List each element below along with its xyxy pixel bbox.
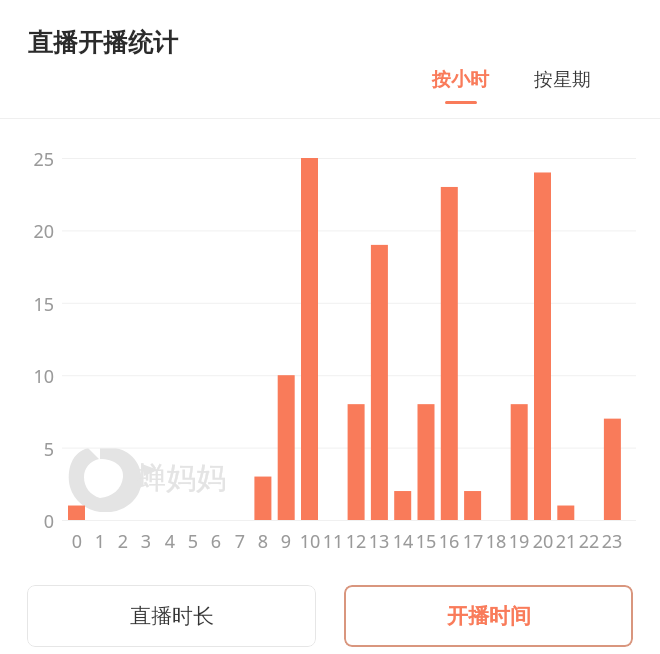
staticText: 3 (132, 529, 160, 554)
staticText: 5 (22, 437, 54, 462)
staticText: 4 (156, 529, 184, 554)
staticText: 20 (22, 219, 54, 244)
staticText: 19 (505, 529, 533, 554)
button[interactable]: 开播时间 (344, 585, 633, 647)
staticText: 1 (86, 529, 114, 554)
staticText: 20 (529, 529, 557, 554)
staticText: 15 (22, 292, 54, 317)
staticText: 22 (575, 529, 603, 554)
staticText: 8 (249, 529, 277, 554)
staticText: 18 (482, 529, 510, 554)
staticText: 按小时 (432, 68, 489, 92)
staticText: 17 (459, 529, 487, 554)
staticText: 直播时长 (130, 603, 214, 629)
staticText: 10 (22, 364, 54, 389)
staticText: 5 (179, 529, 207, 554)
staticText: 按星期 (534, 68, 591, 92)
staticText: 13 (365, 529, 393, 554)
staticText: 25 (22, 147, 54, 172)
staticText: 9 (272, 529, 300, 554)
staticText: 开播时间 (447, 603, 531, 629)
staticText: 11 (319, 529, 347, 554)
staticText: 14 (389, 529, 417, 554)
staticText: 23 (598, 529, 626, 554)
button[interactable]: 按星期 (526, 66, 599, 94)
staticText: 7 (226, 529, 254, 554)
staticText: 2 (109, 529, 137, 554)
staticText: 12 (342, 529, 370, 554)
staticText: 0 (63, 529, 91, 554)
button[interactable]: 直播时长 (27, 585, 316, 647)
staticText: 直播开播统计 (28, 27, 178, 58)
staticText: 0 (22, 509, 54, 534)
staticText: 10 (296, 529, 324, 554)
staticText: 21 (552, 529, 580, 554)
staticText: 16 (435, 529, 463, 554)
staticText: 6 (202, 529, 230, 554)
staticText: 15 (412, 529, 440, 554)
button[interactable]: 按小时 (424, 66, 497, 106)
staticText: 蝉妈妈 (136, 459, 226, 497)
